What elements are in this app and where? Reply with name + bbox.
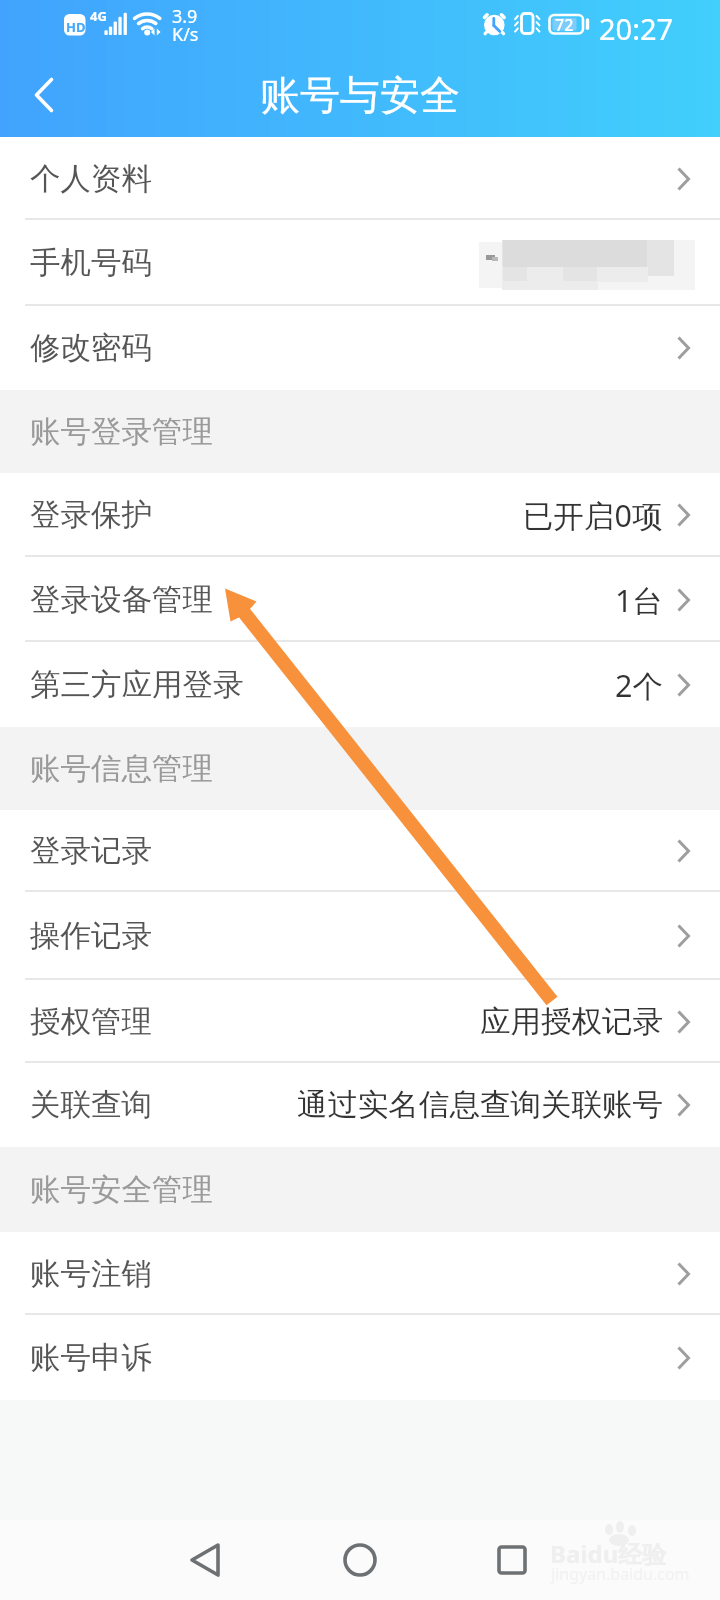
staticText: 操作记录 [30, 917, 152, 955]
staticText: 手机号码 [30, 244, 152, 282]
button[interactable]: 授权管理 [0, 980, 720, 1063]
staticText: 3.9 [172, 4, 198, 29]
staticText: 账号申诉 [30, 1339, 152, 1377]
staticText: 通过实名信息查询关联账号 [297, 1086, 663, 1124]
button[interactable]: 登录设备管理 [0, 557, 720, 642]
button[interactable]: 修改密码 [0, 306, 720, 390]
staticText: 修改密码 [30, 329, 152, 367]
button[interactable]: 第三方应用登录 [0, 642, 720, 727]
staticText: 2个 [615, 664, 663, 706]
staticText: 账号登录管理 [30, 413, 213, 451]
staticText: 第三方应用登录 [30, 666, 244, 704]
staticText: 20:27 [599, 9, 674, 48]
staticText: K/s [172, 22, 199, 47]
staticText: 账号注销 [30, 1255, 152, 1293]
staticText: 关联查询 [30, 1086, 152, 1124]
button[interactable]: 关联查询 [0, 1063, 720, 1147]
staticText: 账号信息管理 [30, 750, 213, 788]
button[interactable]: 操作记录 [0, 892, 720, 980]
button[interactable]: 登录保护 [0, 473, 720, 557]
button[interactable]: 个人资料 [0, 137, 720, 220]
staticText: 1台 [615, 579, 663, 621]
button[interactable]: 手机号码 [0, 220, 720, 306]
staticText: 账号安全管理 [30, 1171, 213, 1209]
staticText: 72 [555, 14, 574, 36]
staticText: 授权管理 [30, 1003, 152, 1041]
staticText: HD [66, 18, 86, 36]
button[interactable]: Back [3, 52, 85, 137]
staticText: 4G [90, 7, 107, 25]
staticText: 登录设备管理 [30, 581, 213, 619]
staticText: 登录记录 [30, 832, 152, 870]
staticText: 账号与安全 [0, 70, 720, 120]
staticText: Baidu经验 [550, 1537, 667, 1570]
staticText: 已开启0项 [523, 494, 663, 536]
button[interactable]: 账号申诉 [0, 1315, 720, 1400]
button[interactable]: Back [155, 1520, 255, 1600]
button[interactable]: 账号注销 [0, 1232, 720, 1315]
staticText: 个人资料 [30, 160, 152, 198]
staticText: 登录保护 [30, 496, 152, 534]
staticText: jingyan.baidu.com [551, 1563, 690, 1585]
button[interactable]: 登录记录 [0, 810, 720, 892]
button[interactable]: Home [310, 1520, 410, 1600]
staticText: 应用授权记录 [480, 1003, 663, 1041]
button[interactable]: Recents [462, 1520, 562, 1600]
